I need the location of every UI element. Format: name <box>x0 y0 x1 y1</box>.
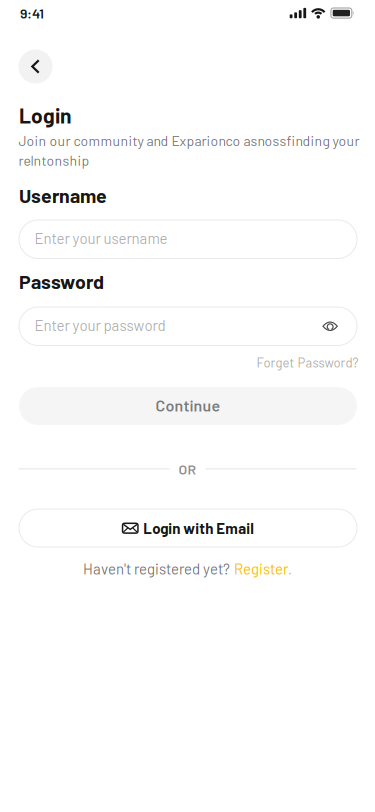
staticText: Username <box>19 183 107 207</box>
staticText: Login with Email <box>143 519 254 537</box>
button[interactable]: Forget Password? <box>256 354 358 370</box>
staticText: Forget Password? <box>256 354 358 370</box>
staticText: 9:41 <box>20 4 44 21</box>
staticText: Enter your password <box>34 316 165 334</box>
button[interactable]: Back <box>18 49 52 83</box>
button[interactable]: Enter your username <box>19 220 357 258</box>
staticText: OR <box>178 460 196 477</box>
staticText: Register. <box>234 559 292 577</box>
button[interactable]: Login with Email <box>19 509 357 547</box>
staticText: Continue <box>155 395 220 415</box>
staticText: Login <box>19 102 71 128</box>
staticText: Join our community and Exparionco asnoss… <box>18 132 359 169</box>
button[interactable]: Enter your password <box>19 307 357 345</box>
staticText: Password <box>19 269 104 293</box>
button[interactable]: Continue <box>19 387 357 425</box>
staticText: Enter your username <box>34 229 167 247</box>
button[interactable]: Register. <box>234 559 292 577</box>
staticText: Haven't registered yet? <box>83 559 230 577</box>
